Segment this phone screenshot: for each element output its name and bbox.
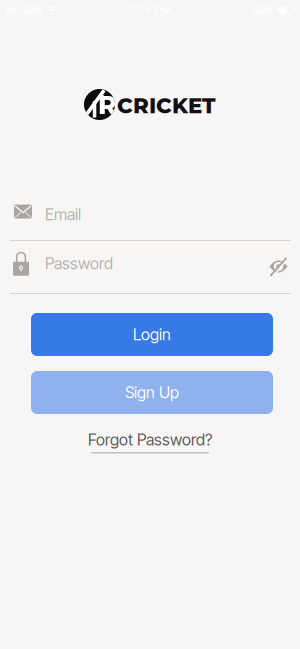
button[interactable]: Sign Up xyxy=(31,371,273,414)
staticText: 55% xyxy=(252,3,273,17)
staticText: Sign Up xyxy=(125,383,179,402)
staticText: Email xyxy=(45,205,81,224)
button[interactable]: Forgot Password? xyxy=(88,430,212,453)
button[interactable]: Show password xyxy=(269,257,288,276)
staticText: 5:04 PM xyxy=(128,3,171,17)
staticText: No SIM xyxy=(6,3,42,17)
staticText: Forgot Password? xyxy=(88,430,212,449)
staticText: Password xyxy=(45,254,113,273)
button[interactable]: Login xyxy=(31,313,273,356)
staticText: CRICKET xyxy=(117,92,216,118)
staticText: Login xyxy=(133,325,171,344)
staticText: R xyxy=(98,90,117,120)
